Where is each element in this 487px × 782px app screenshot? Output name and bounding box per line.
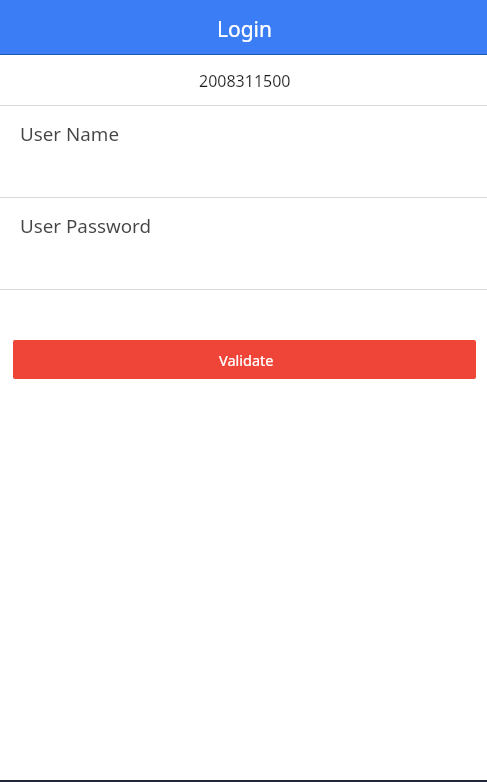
staticText: Validate (219, 350, 274, 370)
staticText: 2008311500 (199, 70, 291, 92)
staticText: User Password (20, 213, 152, 239)
button[interactable]: Validate (13, 340, 476, 379)
button[interactable]: User Password (0, 198, 487, 289)
staticText: Login (217, 15, 273, 44)
button[interactable]: User Name (0, 106, 487, 197)
staticText: User Name (20, 121, 120, 147)
